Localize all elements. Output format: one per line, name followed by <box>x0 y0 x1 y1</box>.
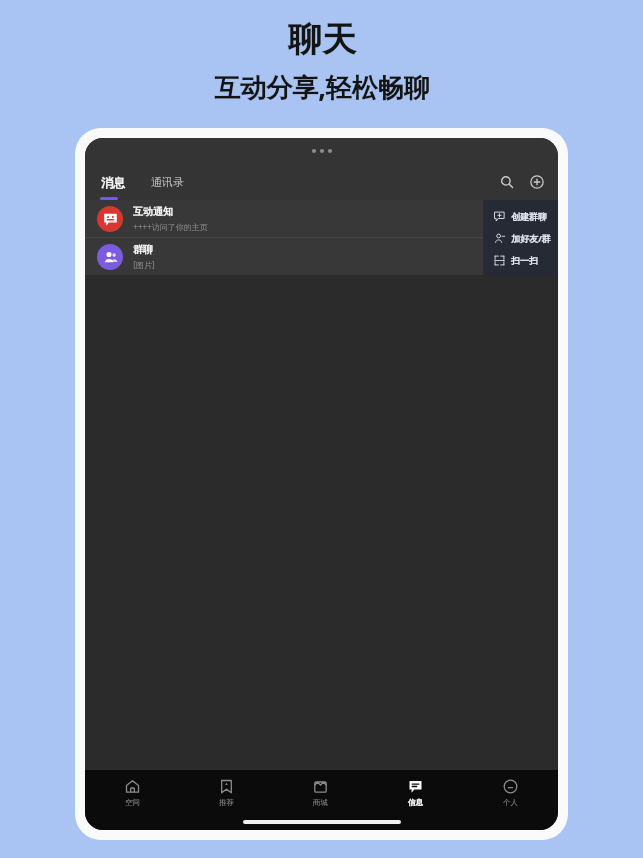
button[interactable]: 创建群聊 <box>493 210 558 222</box>
button[interactable]: 群聊 <box>85 238 558 275</box>
staticText: 互动通知 <box>133 205 173 218</box>
staticText: 群聊 <box>133 243 153 256</box>
button[interactable]: 信息 <box>368 776 463 809</box>
button[interactable]: Search <box>494 169 520 195</box>
staticText: 互动分享,轻松畅聊 <box>214 69 430 105</box>
staticText: 信息 <box>408 798 423 807</box>
staticText: 商城 <box>313 798 328 807</box>
button[interactable]: 推荐 <box>179 776 273 809</box>
button[interactable]: 消息 <box>99 175 127 190</box>
button[interactable]: 扫一扫 <box>493 254 558 266</box>
button[interactable]: 空间 <box>85 776 179 809</box>
staticText: ++++访问了你的主页 <box>133 221 208 232</box>
button[interactable]: 通讯录 <box>149 175 186 189</box>
staticText: 扫一扫 <box>511 255 538 266</box>
staticText: 创建群聊 <box>511 211 547 222</box>
staticText: 消息 <box>101 175 125 190</box>
staticText: 推荐 <box>219 798 234 807</box>
button[interactable]: 互动通知 <box>85 200 558 237</box>
button[interactable]: 个人 <box>463 776 558 809</box>
staticText: 加好友/群 <box>511 232 551 244</box>
button[interactable]: 加好友/群 <box>493 232 558 244</box>
staticText: 通讯录 <box>151 175 184 189</box>
staticText: [图片] <box>133 259 155 270</box>
staticText: 空间 <box>125 798 140 807</box>
button[interactable]: 商城 <box>273 776 368 809</box>
staticText: 个人 <box>503 798 518 807</box>
staticText: 聊天 <box>288 18 356 61</box>
button[interactable]: Add <box>524 169 550 195</box>
